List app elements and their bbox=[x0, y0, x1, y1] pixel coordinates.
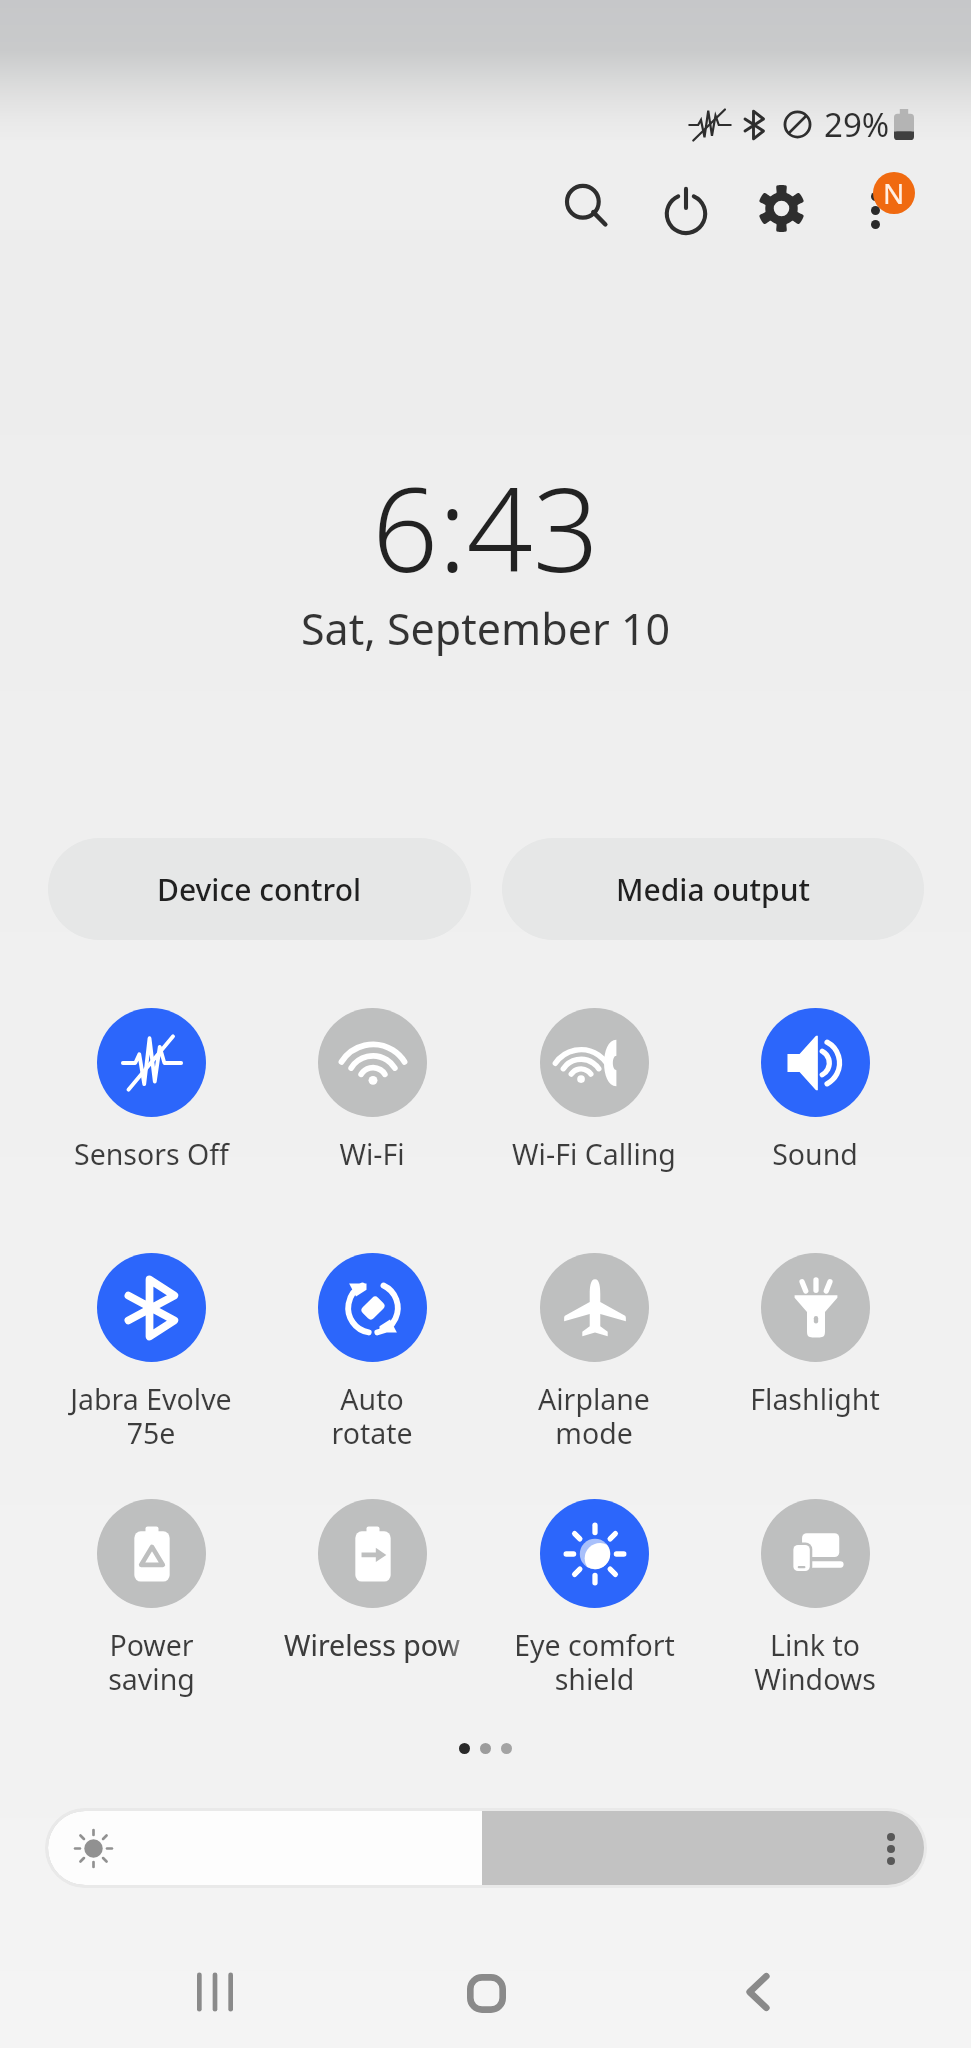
button[interactable]: Brightness settings bbox=[871, 1829, 911, 1869]
staticText: Device control bbox=[157, 869, 362, 910]
button[interactable]: Search bbox=[547, 167, 627, 247]
button[interactable]: Sound bbox=[705, 1004, 925, 1234]
staticText: Flashlight bbox=[750, 1380, 880, 1419]
staticText: Power saving bbox=[108, 1626, 195, 1698]
staticText: Media output bbox=[616, 869, 810, 910]
button[interactable]: Auto rotate bbox=[262, 1249, 482, 1479]
button[interactable]: Power bbox=[646, 170, 726, 250]
button[interactable]: Brightness bbox=[48, 1811, 924, 1885]
button[interactable]: Power saving bbox=[41, 1495, 261, 1725]
button[interactable]: Page 3 bbox=[501, 1743, 512, 1754]
button[interactable]: Wireless pow bbox=[262, 1495, 482, 1725]
staticText: Jabra Evolve 75e bbox=[70, 1380, 232, 1452]
button[interactable]: Recents bbox=[175, 1952, 255, 2032]
button[interactable]: Settings bbox=[741, 168, 821, 248]
staticText: 6:43 bbox=[372, 448, 600, 606]
staticText: Wi-Fi Calling bbox=[512, 1135, 676, 1174]
staticText: 29% bbox=[824, 102, 890, 147]
button[interactable]: Media output bbox=[502, 838, 924, 940]
staticText: Wireless pow bbox=[284, 1626, 460, 1665]
button[interactable]: Wi-Fi bbox=[262, 1004, 482, 1234]
button[interactable]: Jabra Evolve 75e bbox=[41, 1249, 261, 1479]
button[interactable]: Eye comfort shield bbox=[484, 1495, 704, 1725]
button[interactable]: More options bbox=[836, 170, 916, 250]
button[interactable]: Airplane mode bbox=[484, 1249, 704, 1479]
button[interactable]: Home bbox=[446, 1953, 526, 2033]
staticText: Sensors Off bbox=[74, 1135, 229, 1174]
button[interactable]: Page 2 bbox=[480, 1743, 491, 1754]
staticText: Airplane mode bbox=[538, 1380, 650, 1452]
staticText: Auto rotate bbox=[331, 1380, 413, 1452]
staticText: Link to Windows bbox=[754, 1626, 876, 1698]
button[interactable]: Device control bbox=[48, 838, 471, 940]
staticText: Wi-Fi bbox=[339, 1135, 405, 1174]
button[interactable]: Wi-Fi Calling bbox=[484, 1004, 704, 1234]
staticText: Eye comfort shield bbox=[514, 1626, 675, 1698]
staticText: Sound bbox=[772, 1135, 858, 1174]
button[interactable]: Page 1 bbox=[459, 1743, 470, 1754]
button[interactable]: Back bbox=[718, 1952, 798, 2032]
button[interactable]: Flashlight bbox=[705, 1249, 925, 1479]
staticText: Sat, September 10 bbox=[301, 599, 671, 658]
staticText: N bbox=[883, 174, 905, 212]
button[interactable]: Sensors Off bbox=[41, 1004, 261, 1234]
button[interactable]: Link to Windows bbox=[705, 1495, 925, 1725]
